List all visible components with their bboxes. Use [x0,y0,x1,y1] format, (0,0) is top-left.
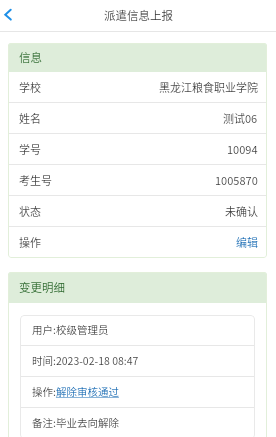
button[interactable]: 操作:解除审核通过 [32,384,119,399]
staticText: 用户:校级管理员 [32,322,109,337]
staticText: 时间:2023-02-18 08:47 [32,353,139,368]
button[interactable]: Back [0,0,16,29]
button[interactable]: 编辑 [236,231,258,253]
staticText: 备注:毕业去向解除 [32,415,119,430]
staticText: 10094 [227,141,258,157]
staticText: 编辑 [236,234,258,250]
staticText: 考生号 [19,172,52,188]
staticText: 学校 [19,79,41,95]
staticText: 操作 [19,234,41,250]
staticText: 变更明细 [19,279,65,296]
staticText: 1005870 [215,172,258,188]
staticText: 未确认 [225,203,258,219]
staticText: 测试06 [223,110,258,126]
staticText: 黑龙江粮食职业学院 [159,79,258,95]
staticText: 状态 [19,203,41,219]
staticText: 派遣信息上报 [104,7,173,24]
staticText: 姓名 [19,110,41,126]
staticText: 学号 [19,141,41,157]
staticText: 信息 [19,49,42,66]
